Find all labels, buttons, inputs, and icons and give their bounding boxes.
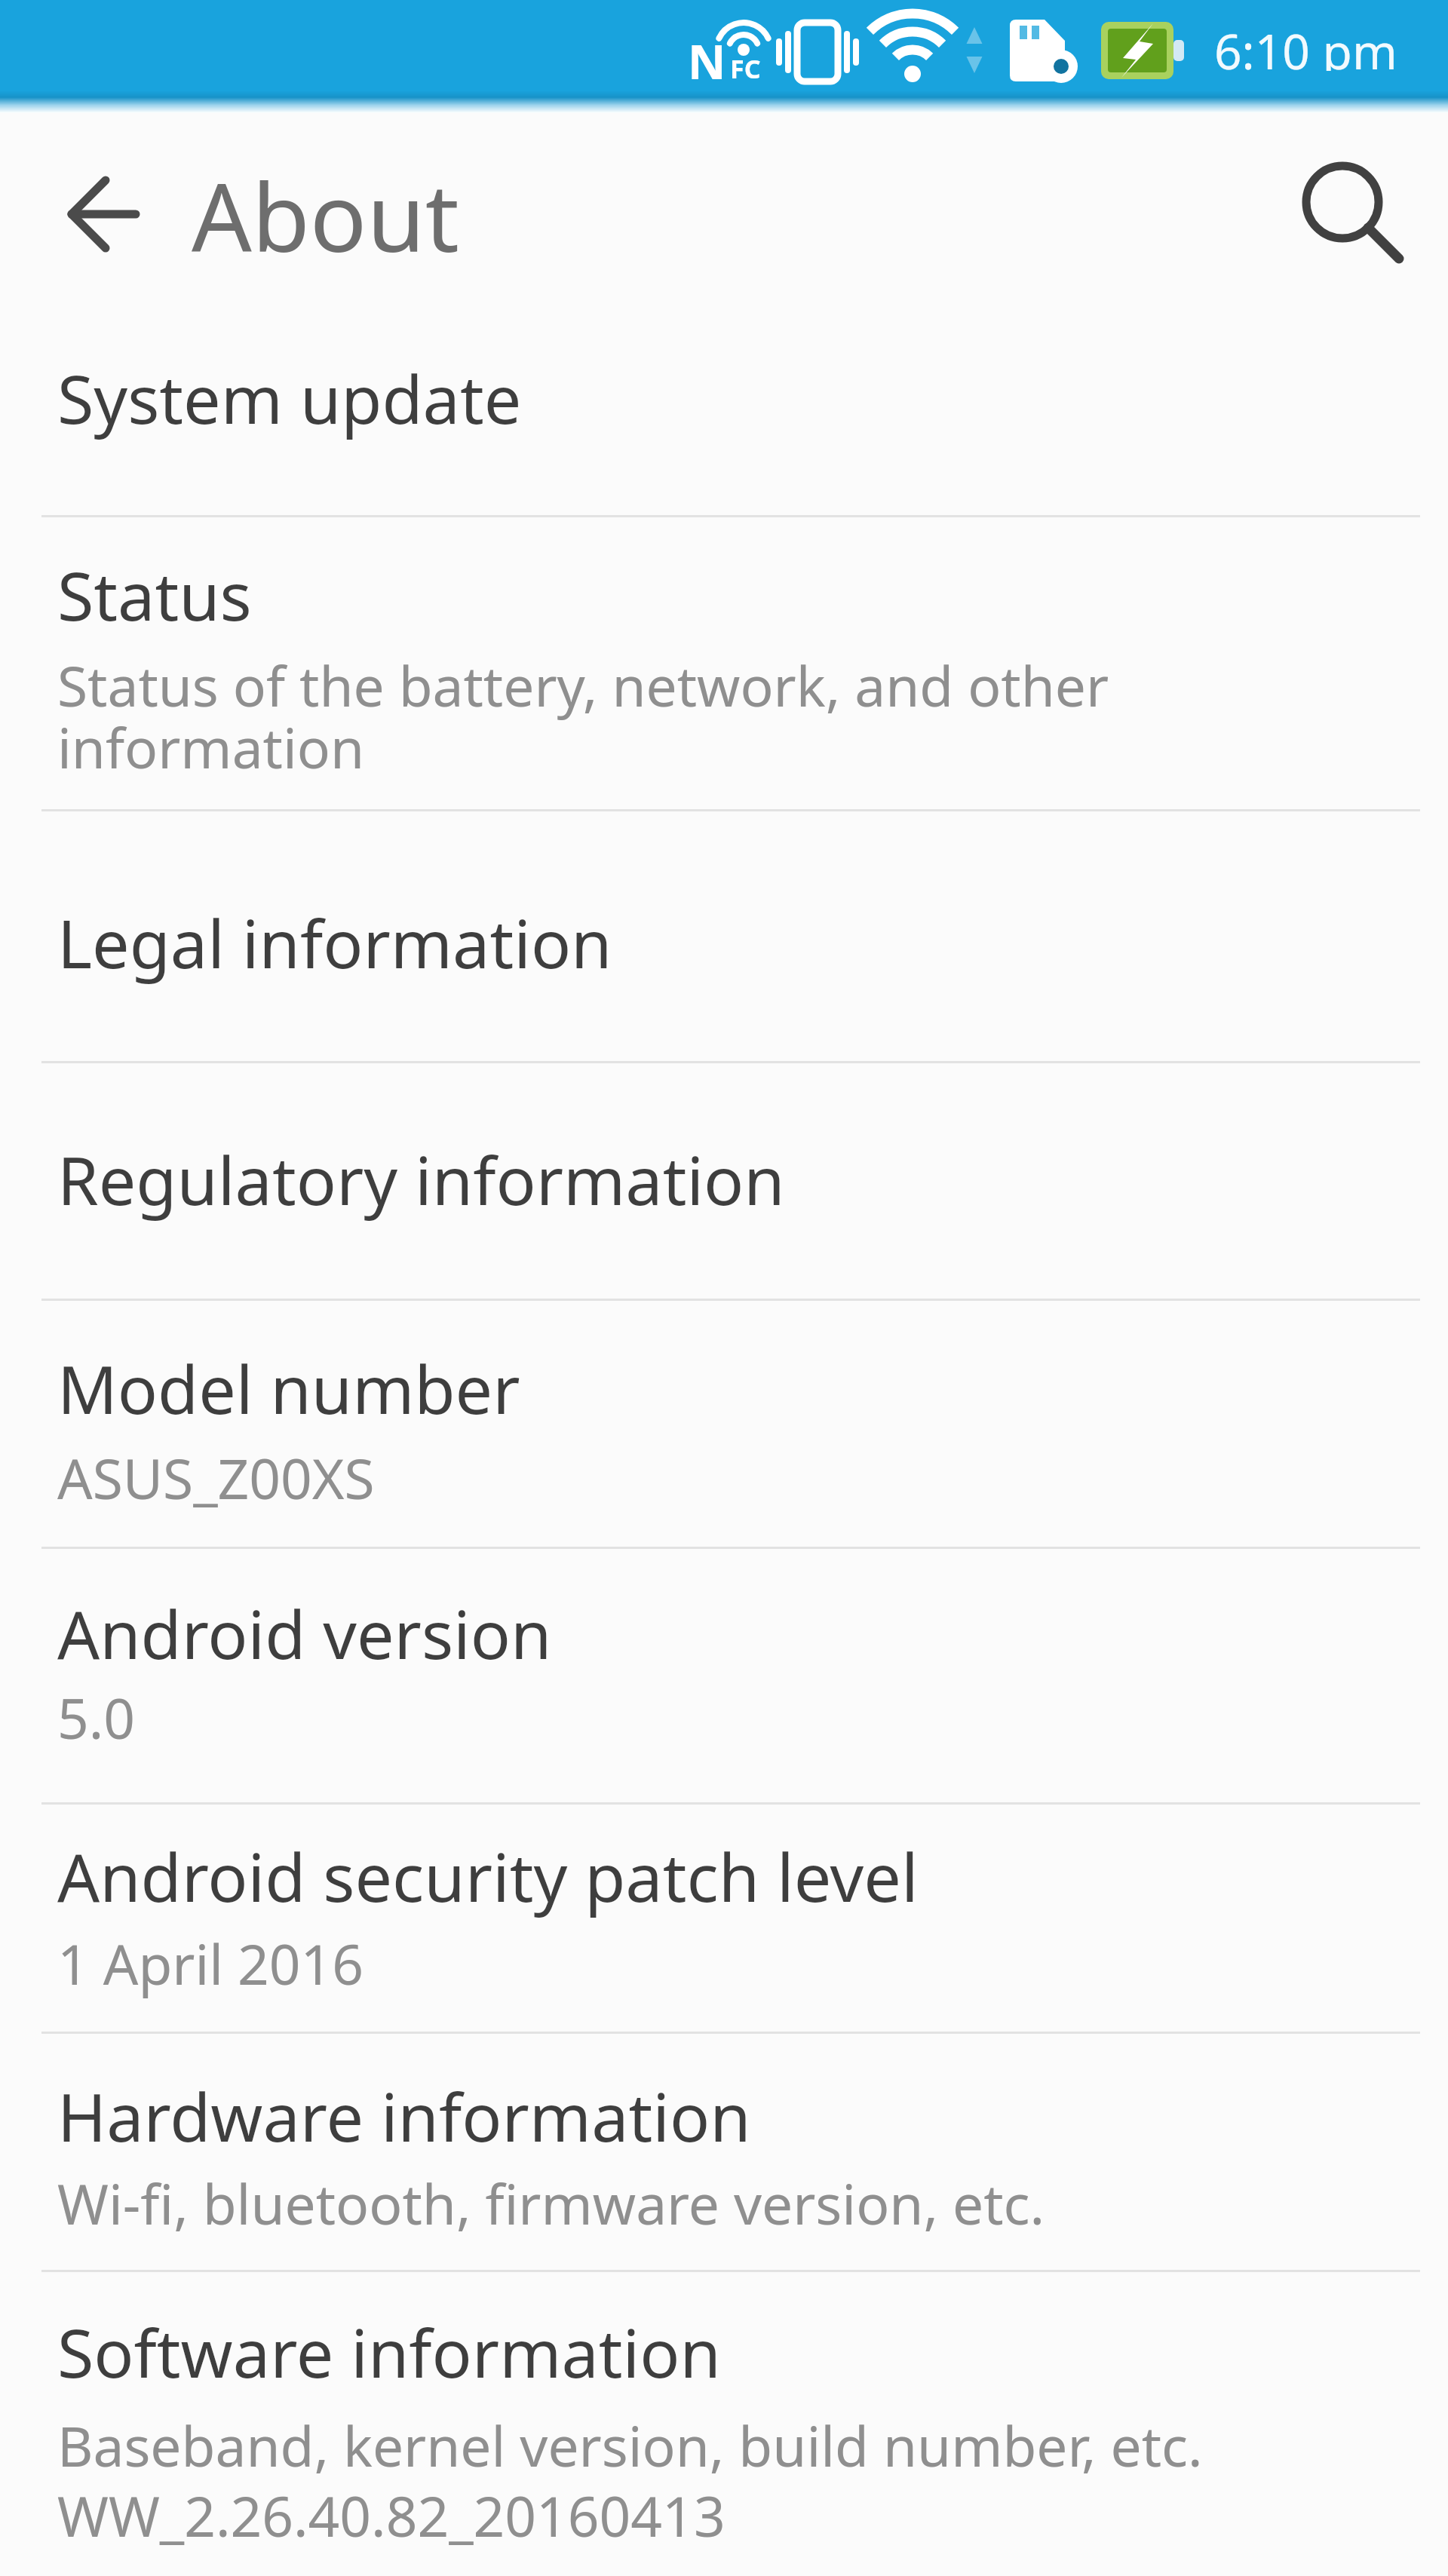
staticText: Android security patch level	[57, 1831, 919, 1921]
staticText: Android version	[57, 1588, 552, 1679]
button[interactable]: Android version	[0, 1547, 1448, 1802]
staticText: 6:10 pm	[1214, 18, 1397, 71]
button[interactable]: Hardware information	[0, 2032, 1448, 2270]
staticText: Hardware information	[57, 2071, 751, 2161]
button[interactable]: Status	[0, 515, 1448, 809]
staticText: Wi-fi, bluetooth, firmware version, etc.	[57, 2166, 1045, 2240]
button[interactable]: Software information	[0, 2270, 1448, 2576]
staticText: ASUS_Z00XS	[57, 1440, 375, 1515]
staticText: FC	[730, 51, 761, 86]
button[interactable]	[30, 154, 151, 274]
staticText: 5.0	[57, 1680, 136, 1755]
staticText: About	[192, 151, 459, 279]
button[interactable]: Regulatory information	[0, 1061, 1448, 1299]
staticText: WW_2.26.40.82_20160413	[57, 2478, 726, 2553]
button[interactable]: System update	[0, 336, 1448, 515]
staticText: Model number	[57, 1343, 520, 1434]
button[interactable]: Android security patch level	[0, 1802, 1448, 2032]
staticText: information	[57, 710, 365, 784]
staticText: Legal information	[57, 897, 612, 988]
staticText: Regulatory information	[57, 1134, 785, 1225]
staticText: Baseband, kernel version, build number, …	[57, 2408, 1203, 2482]
staticText: Status of the battery, network, and othe…	[57, 648, 1109, 722]
button[interactable]: Model number	[0, 1299, 1448, 1547]
staticText: N	[688, 29, 726, 93]
button[interactable]: Legal information	[0, 809, 1448, 1061]
staticText: Status	[57, 550, 252, 640]
staticText: System update	[57, 353, 522, 443]
staticText: Software information	[57, 2307, 721, 2397]
staticText: 1 April 2016	[57, 1926, 364, 2001]
button[interactable]	[1275, 134, 1425, 285]
